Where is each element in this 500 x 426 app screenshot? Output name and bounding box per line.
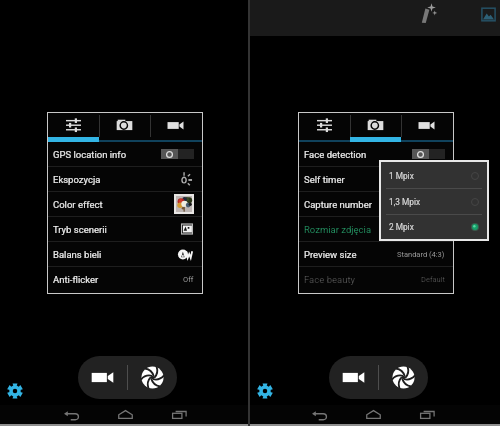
button[interactable]: Video (401, 113, 452, 137)
button[interactable]: Settings (299, 113, 350, 137)
button[interactable]: Self timer (299, 167, 453, 192)
button[interactable]: Back (53, 405, 90, 424)
button[interactable]: Home (107, 405, 144, 424)
button[interactable]: Settings (48, 113, 99, 137)
button[interactable]: Back (301, 405, 338, 424)
button[interactable]: Tryb scenerii (48, 217, 202, 242)
button[interactable]: Balans bieli (48, 242, 202, 267)
button[interactable]: 2 Mpix (381, 215, 487, 238)
button[interactable]: Home (355, 405, 392, 424)
button[interactable]: Recents (409, 405, 446, 424)
button[interactable]: Ekspozycja (48, 167, 202, 192)
button[interactable]: Record video (329, 356, 378, 399)
button[interactable]: Camera (99, 113, 150, 137)
button[interactable]: Camera (350, 113, 401, 137)
button[interactable]: Recents (161, 405, 198, 424)
staticText: 1,3 Mpix (389, 197, 421, 207)
staticText: Color effect (53, 199, 103, 210)
button[interactable]: 1,3 Mpix (381, 189, 487, 214)
staticText: Face beauty (304, 274, 356, 285)
button[interactable]: Anti-flicker (48, 267, 202, 292)
button[interactable]: GPS location info (48, 142, 202, 167)
button[interactable]: Settings (7, 383, 23, 399)
staticText: 2 Mpix (389, 222, 414, 232)
button[interactable]: Settings (257, 383, 273, 399)
staticText: Standard (4:3) (397, 250, 445, 259)
staticText: GPS location info (53, 149, 127, 160)
staticText: Default (421, 275, 445, 284)
staticText: Off (183, 275, 194, 284)
button[interactable]: Effects (420, 5, 438, 23)
button[interactable]: Record video (78, 356, 127, 399)
button[interactable]: Face beauty (299, 267, 453, 292)
staticText: Face detection (304, 149, 367, 160)
staticText: Ekspozycja (53, 174, 101, 185)
button[interactable]: Video (150, 113, 201, 137)
staticText: Self timer (304, 174, 345, 185)
button[interactable]: Gallery (481, 7, 496, 22)
staticText: Capture number (304, 199, 372, 210)
button[interactable]: Rozmiar zdjęcia (299, 217, 453, 242)
staticText: Preview size (304, 249, 357, 260)
button[interactable]: Preview size (299, 242, 453, 267)
button[interactable]: 1 Mpix (381, 163, 487, 188)
button[interactable]: Capture number (299, 192, 453, 217)
button[interactable]: Shutter (379, 356, 428, 399)
button[interactable]: Face detection (299, 142, 453, 167)
button[interactable]: Shutter (128, 356, 177, 399)
staticText: Anti-flicker (53, 274, 99, 285)
button[interactable]: Color effect (48, 192, 202, 217)
staticText: Tryb scenerii (53, 224, 107, 235)
staticText: Balans bieli (53, 249, 102, 260)
staticText: Rozmiar zdjęcia (304, 224, 372, 235)
staticText: 1 Mpix (389, 171, 414, 181)
